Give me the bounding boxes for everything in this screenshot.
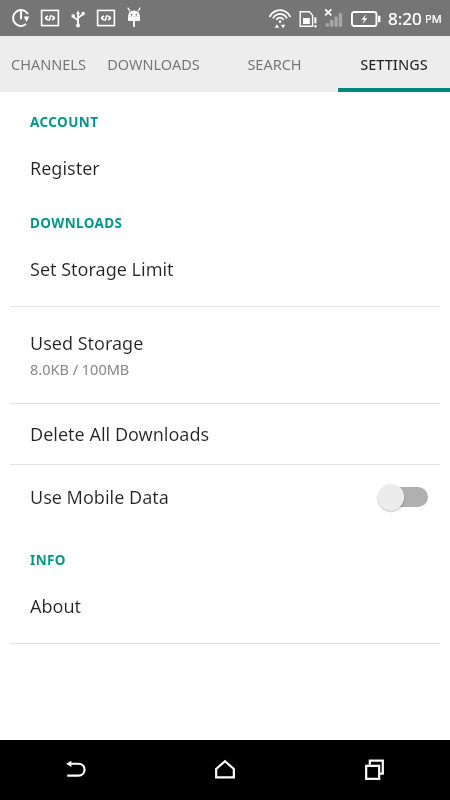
button[interactable]: About bbox=[0, 580, 450, 632]
staticText: ACCOUNT bbox=[30, 113, 99, 131]
staticText: SEARCH bbox=[247, 54, 302, 74]
button[interactable]: Delete All Downloads bbox=[0, 404, 450, 464]
staticText: Use Mobile Data bbox=[30, 485, 169, 510]
staticText: Set Storage Limit bbox=[30, 257, 174, 282]
button[interactable]: Back bbox=[0, 740, 150, 800]
staticText: 8.0KB / 100MB bbox=[30, 359, 130, 379]
button[interactable]: Set Storage Limit bbox=[0, 243, 450, 295]
staticText: 8:20 bbox=[388, 7, 422, 30]
staticText: DOWNLOADS bbox=[107, 54, 200, 74]
button[interactable]: Recent apps bbox=[300, 740, 450, 800]
button[interactable]: SEARCH bbox=[211, 36, 337, 92]
button[interactable]: SETTINGS bbox=[337, 36, 450, 92]
button[interactable]: DOWNLOADS bbox=[96, 36, 211, 92]
button[interactable]: Home bbox=[150, 740, 300, 800]
button[interactable]: Used Storage bbox=[0, 307, 450, 403]
staticText: About bbox=[30, 594, 82, 619]
button[interactable]: CHANNELS bbox=[0, 36, 96, 92]
staticText: CHANNELS bbox=[11, 54, 86, 74]
staticText: Delete All Downloads bbox=[30, 422, 210, 447]
button[interactable]: Use Mobile Data toggle bbox=[376, 481, 428, 513]
button[interactable]: Use Mobile Data bbox=[0, 465, 450, 529]
staticText: Register bbox=[30, 156, 100, 181]
staticText: Used Storage bbox=[30, 331, 144, 356]
staticText: INFO bbox=[30, 551, 66, 569]
button[interactable]: Register bbox=[0, 142, 450, 194]
staticText: PM bbox=[425, 11, 442, 26]
staticText: SETTINGS bbox=[360, 54, 428, 74]
staticText: DOWNLOADS bbox=[30, 214, 123, 232]
